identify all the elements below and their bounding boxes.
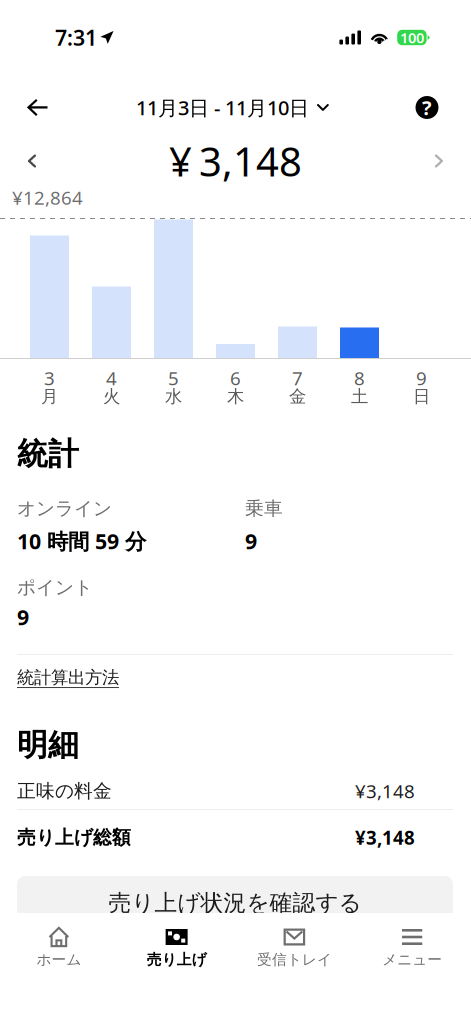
staticText: 木 [227,386,244,407]
staticText: 4 [106,366,117,390]
staticText: 3 [44,366,55,390]
staticText: 土 [351,386,368,407]
staticText: 金 [289,386,306,407]
button[interactable]: ホーム [0,913,118,971]
staticText: 売り上げ [147,950,207,968]
staticText: 8 [354,366,365,390]
staticText: 100 [400,28,424,47]
button[interactable]: Previous week [11,140,53,182]
staticText: 5 [168,366,179,390]
staticText: 6 [230,366,241,390]
staticText: ¥3,148 [355,825,415,850]
staticText: 月 [41,386,58,407]
staticText: 日 [413,386,430,407]
button[interactable]: 11月3日 - 11月10日 [136,83,329,131]
button[interactable]: Next week [418,140,460,182]
button[interactable]: Back [14,83,62,131]
staticText: メニュー [382,950,442,968]
staticText: 明細 [17,726,79,764]
staticText: 9 [17,603,29,631]
button[interactable]: 統計算出方法 [17,655,119,691]
button[interactable]: 売り上げ状況を確認する [17,876,453,930]
staticText: 火 [103,386,120,407]
staticText: 売り上げ総額 [17,826,131,849]
staticText: 水 [165,386,182,407]
staticText: 10 時間 59 分 [17,527,146,555]
staticText: 11月3日 - 11月10日 [136,94,309,121]
staticText: ¥12,864 [12,185,83,210]
staticText: 9 [245,527,257,555]
staticText: 7 [292,366,303,390]
staticText: ¥ 3,148 [169,134,302,187]
button[interactable]: Help [403,83,451,131]
staticText: 乗車 [245,497,283,520]
staticText: 統計 [17,435,79,473]
staticText: 7:31 [55,23,97,52]
button[interactable]: 受信トレイ [235,913,353,971]
staticText: 9 [416,366,427,390]
staticText: ポイント [17,576,93,599]
staticText: 受信トレイ [257,950,332,968]
staticText: オンライン [17,497,112,520]
staticText: 売り上げ状況を確認する [108,889,361,917]
button[interactable]: 売り上げ [118,913,236,971]
staticText: 統計算出方法 [17,667,119,688]
staticText: ¥3,148 [355,779,415,803]
staticText: ホーム [36,950,81,968]
button[interactable]: メニュー [353,913,471,971]
staticText: 正味の料金 [17,779,112,802]
staticText: ? [422,94,432,121]
